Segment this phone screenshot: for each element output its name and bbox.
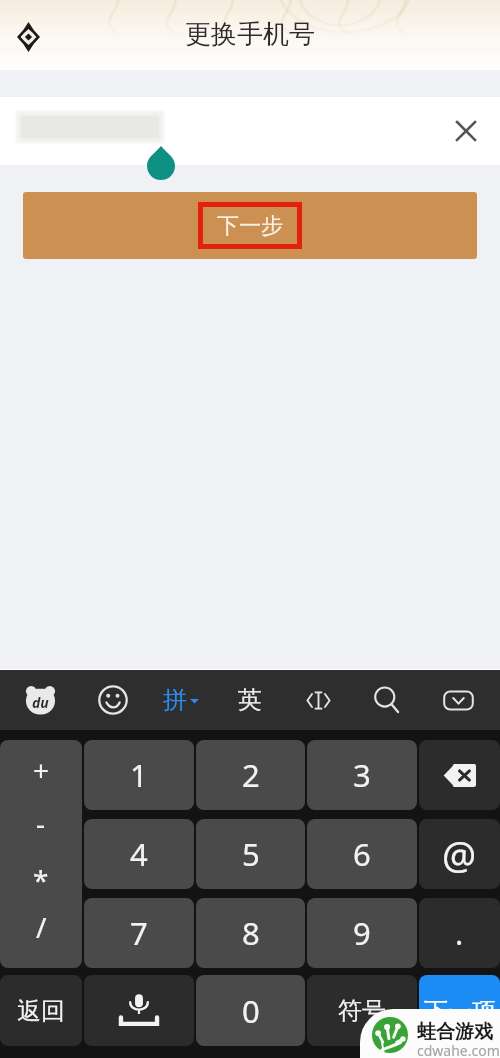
staticText: 6 — [353, 833, 371, 875]
button[interactable]: 下一步 — [23, 192, 477, 259]
staticText: 下一步 — [217, 212, 283, 240]
staticText: 7 — [130, 912, 148, 954]
staticText: 5 — [242, 833, 260, 875]
button[interactable]: . — [419, 898, 500, 968]
button[interactable]: 1 — [84, 740, 194, 810]
staticText: + — [33, 751, 50, 789]
staticText: 蛙合游戏 — [417, 1020, 493, 1044]
button[interactable]: Clear — [446, 111, 486, 151]
button[interactable]: 7 — [84, 898, 194, 968]
button[interactable]: Voice input — [84, 975, 194, 1046]
staticText: du — [32, 693, 49, 712]
staticText: 下一项 — [424, 996, 496, 1026]
staticText: / — [36, 908, 47, 946]
staticText: 1 — [130, 754, 148, 796]
staticText: 0 — [242, 990, 260, 1032]
staticText: 9 — [353, 912, 371, 954]
button[interactable]: 8 — [196, 898, 305, 968]
button[interactable]: 拼 — [163, 677, 209, 723]
staticText: 更换手机号 — [185, 18, 315, 51]
button[interactable]: 2 — [196, 740, 305, 810]
staticText: @ — [442, 828, 477, 880]
button[interactable]: 符号 — [307, 975, 417, 1046]
staticText: 2 — [242, 754, 260, 796]
button[interactable]: 5 — [196, 819, 305, 889]
button[interactable]: 返回 — [0, 975, 82, 1046]
staticText: 符号 — [338, 996, 386, 1026]
staticText: cdwahe.com — [417, 1041, 500, 1058]
staticText: 英 — [238, 685, 262, 715]
button[interactable]: Search — [363, 677, 409, 723]
button[interactable]: + — [0, 740, 82, 968]
button[interactable]: Hide keyboard — [435, 677, 481, 723]
button[interactable]: Move cursor — [295, 677, 341, 723]
button[interactable]: 0 — [196, 975, 305, 1046]
staticText: * — [33, 861, 49, 899]
button[interactable]: 6 — [307, 819, 417, 889]
button[interactable]: 下一项 — [419, 975, 500, 1046]
staticText: 拼 — [163, 685, 187, 715]
staticText: 返回 — [17, 996, 65, 1026]
staticText: - — [36, 804, 46, 842]
button[interactable]: @ — [419, 819, 500, 889]
button[interactable]: 英 — [232, 677, 268, 723]
button[interactable]: Backspace — [419, 740, 500, 810]
button[interactable]: Back — [6, 14, 51, 59]
staticText: . — [455, 912, 464, 954]
staticText: 3 — [353, 754, 371, 796]
button[interactable]: Baidu input — [17, 677, 63, 723]
staticText: 4 — [130, 833, 148, 875]
staticText: 8 — [242, 912, 260, 954]
button[interactable]: 9 — [307, 898, 417, 968]
button[interactable]: 3 — [307, 740, 417, 810]
button[interactable]: 4 — [84, 819, 194, 889]
button[interactable]: Emoji — [90, 677, 136, 723]
